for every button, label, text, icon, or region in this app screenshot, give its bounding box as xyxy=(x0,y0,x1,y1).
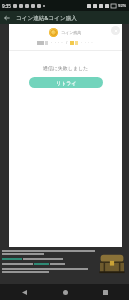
staticText: 通信に失敗しました xyxy=(9,65,122,71)
staticText: ・・・・ xyxy=(80,41,94,45)
button[interactable]: Close xyxy=(111,26,120,35)
staticText: 9:35 xyxy=(2,3,11,9)
staticText: コイン連結&コイン購入 xyxy=(16,14,77,22)
staticText: リトライ xyxy=(56,80,77,86)
button[interactable]: Recent apps xyxy=(99,286,111,298)
button[interactable]: Back xyxy=(18,286,30,298)
staticText: / xyxy=(66,40,68,45)
staticText: ・・・・ xyxy=(50,41,64,45)
staticText: 92% xyxy=(118,3,127,9)
other: Treasure chest illustration xyxy=(97,250,127,276)
button[interactable]: リトライ xyxy=(29,77,103,88)
button[interactable]: Back xyxy=(0,11,13,24)
button[interactable]: Home xyxy=(59,286,71,298)
staticText: コイン残高 xyxy=(61,30,82,35)
